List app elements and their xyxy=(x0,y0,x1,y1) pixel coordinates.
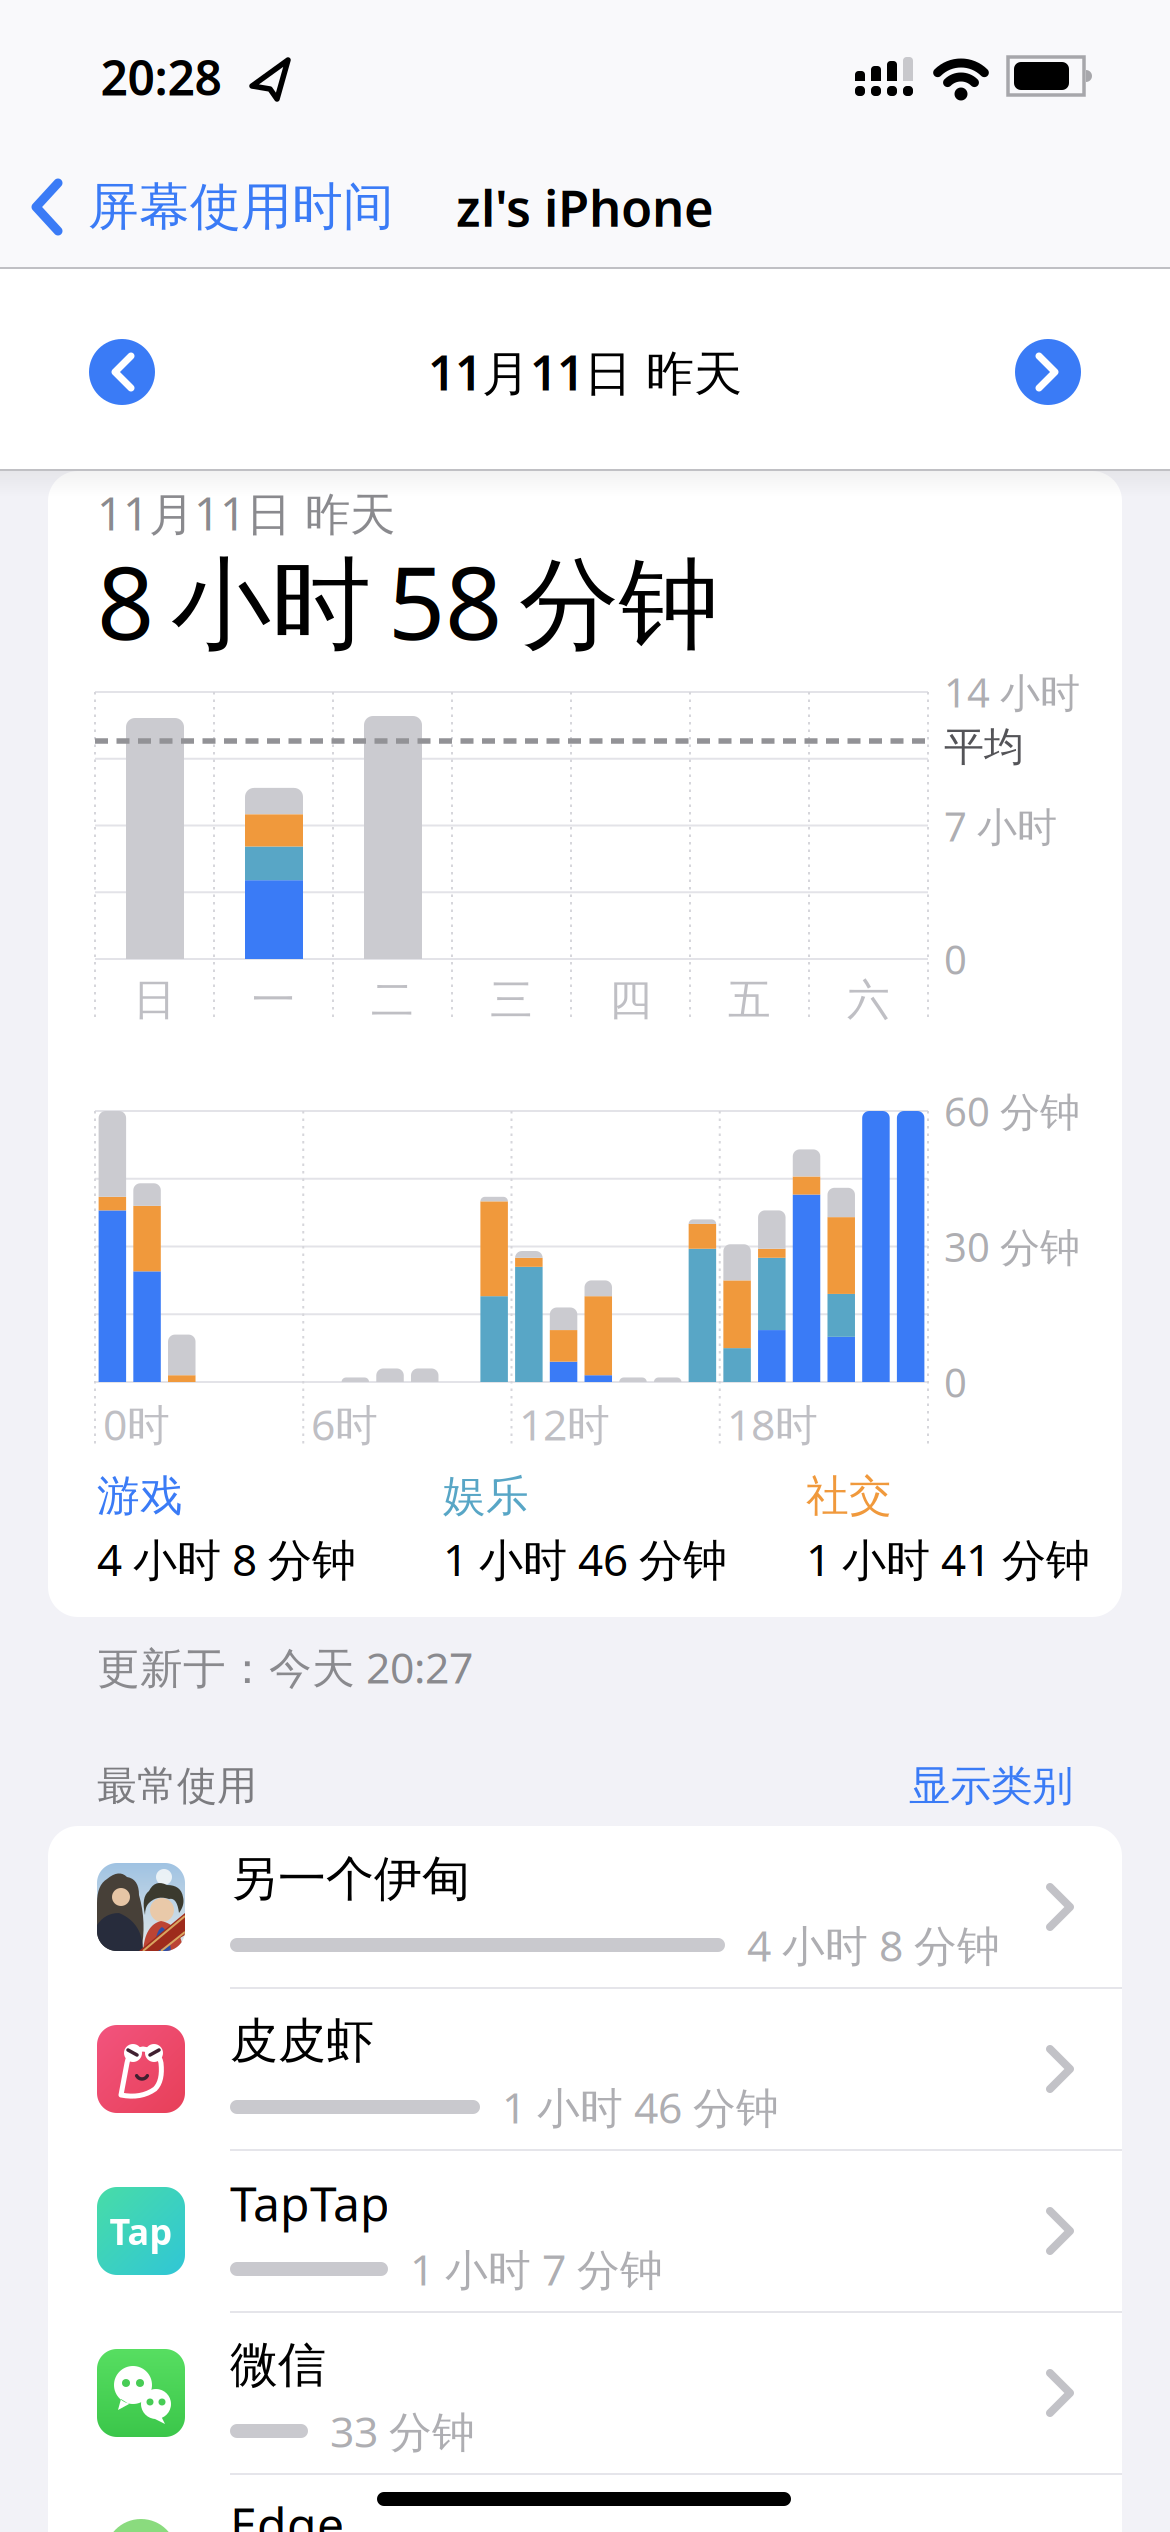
staticText: 屏幕使用时间 xyxy=(88,176,394,238)
staticText: 30 分钟 xyxy=(944,1220,1080,1273)
staticText: 18时 xyxy=(727,1396,818,1452)
staticText: 1 小时 41 分钟 xyxy=(806,1530,1090,1588)
staticText: 娱乐 xyxy=(443,1470,529,1522)
staticText: 另一个伊甸 xyxy=(230,1849,470,1908)
staticText: 11月11日 昨天 xyxy=(97,483,395,543)
staticText: 11月11日 昨天 xyxy=(428,340,742,404)
staticText: 14 小时 xyxy=(944,665,1080,718)
staticText: Edge xyxy=(230,2492,344,2532)
staticText: 更新于：今天 20:27 xyxy=(97,1639,473,1695)
staticText: 六 xyxy=(847,974,890,1026)
staticText: 平均 xyxy=(944,722,1024,771)
staticText: 60 分钟 xyxy=(944,1084,1080,1137)
staticText: 社交 xyxy=(806,1470,892,1522)
staticText: 0 xyxy=(944,1355,967,1408)
staticText: 0时 xyxy=(103,1396,170,1452)
staticText: 4 小时 8 分钟 xyxy=(747,1917,1000,1973)
staticText: 7 小时 xyxy=(944,799,1057,852)
staticText: 0 xyxy=(944,932,967,985)
staticText: 游戏 xyxy=(97,1470,183,1522)
staticText: 一 xyxy=(252,974,295,1026)
staticText: 8 小时 58 分钟 xyxy=(97,535,719,667)
staticText: 显示类别 xyxy=(909,1761,1073,1811)
staticText: 三 xyxy=(490,974,533,1026)
staticText: 4 小时 8 分钟 xyxy=(97,1530,356,1588)
staticText: 1 小时 46 分钟 xyxy=(502,2079,779,2135)
staticText: 33 分钟 xyxy=(330,2403,475,2459)
staticText: 20:28 xyxy=(100,45,221,109)
staticText: zl's iPhone xyxy=(456,173,714,241)
staticText: 1 小时 46 分钟 xyxy=(443,1530,727,1588)
staticText: Tap xyxy=(109,2207,172,2255)
staticText: 皮皮虾 xyxy=(230,2011,374,2070)
staticText: 五 xyxy=(728,974,771,1026)
staticText: 6时 xyxy=(311,1396,378,1452)
staticText: TapTap xyxy=(230,2171,390,2235)
staticText: 四 xyxy=(609,974,652,1026)
staticText: 1 小时 7 分钟 xyxy=(410,2241,663,2297)
staticText: 最常使用 xyxy=(97,1761,257,1810)
staticText: 日 xyxy=(133,974,176,1026)
staticText: 微信 xyxy=(230,2335,326,2394)
staticText: 二 xyxy=(371,974,414,1026)
staticText: 12时 xyxy=(519,1396,610,1452)
